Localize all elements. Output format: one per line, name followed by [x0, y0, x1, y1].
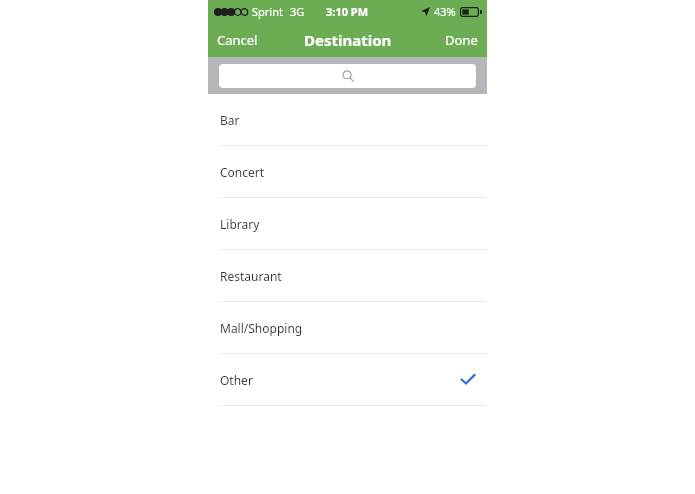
staticText: Other: [220, 372, 253, 388]
button[interactable]: Bar: [208, 94, 487, 146]
button[interactable]: Concert: [208, 146, 487, 198]
staticText: Done: [445, 31, 478, 49]
button[interactable]: Done: [436, 22, 487, 57]
button[interactable]: Library: [208, 198, 487, 250]
button[interactable]: Other: [208, 354, 487, 406]
button[interactable]: Mall/Shopping: [208, 302, 487, 354]
other: Selected: [461, 374, 475, 385]
button[interactable]: Search: [219, 64, 476, 88]
staticText: 43%: [434, 4, 456, 19]
staticText: Concert: [220, 164, 265, 180]
staticText: Restaurant: [220, 268, 282, 284]
button[interactable]: Cancel: [208, 22, 267, 57]
staticText: Bar: [220, 112, 240, 128]
staticText: Cancel: [217, 31, 258, 49]
staticText: Mall/Shopping: [220, 320, 303, 336]
staticText: Destination: [304, 30, 392, 50]
staticText: Sprint: [252, 4, 283, 19]
staticText: 3G: [290, 4, 305, 19]
staticText: 3:10 PM: [326, 4, 369, 19]
staticText: Library: [220, 216, 260, 232]
button[interactable]: Restaurant: [208, 250, 487, 302]
